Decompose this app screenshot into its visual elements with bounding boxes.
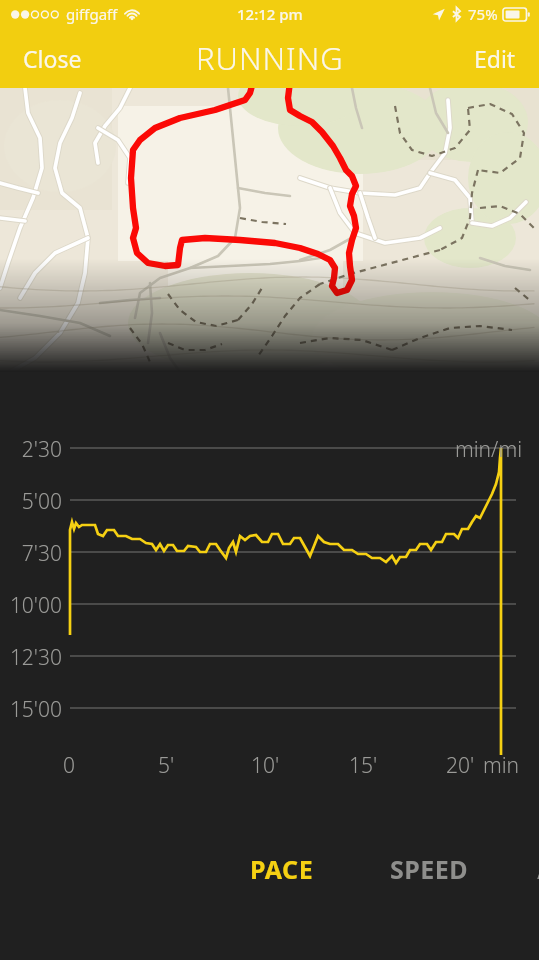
button[interactable]: PACE (246, 842, 318, 896)
button[interactable]: Edit (451, 30, 539, 87)
staticText: Close (23, 43, 82, 74)
staticText: 0 (39, 751, 99, 780)
staticText: 10' (235, 751, 295, 780)
staticText: 2'30 (4, 435, 62, 464)
staticText: min (471, 751, 531, 780)
staticText: SPEED (390, 852, 469, 886)
staticText: giffgaff (66, 4, 118, 24)
staticText: 15' (333, 751, 393, 780)
staticText: 75% (468, 4, 498, 24)
staticText: 5'00 (4, 487, 62, 516)
staticText: 5' (136, 751, 196, 780)
button[interactable]: SPEED (386, 842, 473, 896)
staticText: 20' (430, 751, 490, 780)
staticText: RUNNING (196, 37, 344, 79)
staticText: 12'30 (4, 643, 62, 672)
staticText: 15'00 (4, 695, 62, 724)
button[interactable]: ALTITUDE (533, 842, 539, 896)
staticText: min/mi (455, 435, 523, 464)
staticText: 10'00 (4, 591, 62, 620)
button[interactable]: Close (0, 30, 105, 87)
staticText: Edit (474, 43, 516, 74)
button[interactable]: Route map (0, 88, 539, 372)
staticText: PACE (250, 852, 314, 886)
staticText: 7'30 (4, 539, 62, 568)
staticText: 12:12 pm (237, 4, 303, 24)
